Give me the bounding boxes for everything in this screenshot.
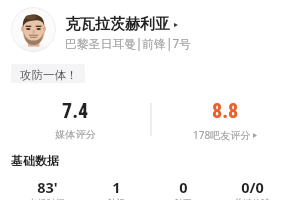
- button[interactable]: 0: [146, 177, 220, 200]
- button[interactable]: 8.8: [150, 99, 300, 142]
- button[interactable]: 7.4: [0, 99, 150, 141]
- button[interactable]: 攻防一体！: [11, 64, 85, 83]
- staticText: 0/0: [241, 177, 264, 197]
- button[interactable]: Player photo: [11, 7, 56, 52]
- button[interactable]: 1: [79, 177, 153, 200]
- staticText: 0: [179, 177, 188, 197]
- staticText: 克瓦拉茨赫利亚: [65, 15, 170, 34]
- staticText: 射正: [174, 197, 192, 200]
- staticText: 巴黎圣日耳曼|前锋|7号: [65, 35, 191, 51]
- staticText: 7.4: [62, 99, 89, 122]
- staticText: 关键传球: [234, 197, 270, 200]
- staticText: 178吧友评分: [193, 128, 251, 142]
- staticText: 83': [37, 177, 58, 197]
- staticText: 1: [112, 177, 121, 197]
- button[interactable]: 克瓦拉茨赫利亚: [65, 15, 178, 34]
- staticText: 媒体评分: [55, 128, 96, 141]
- staticText: 攻防一体！: [20, 68, 78, 82]
- staticText: 出场时间: [29, 197, 65, 200]
- staticText: 8.8: [212, 99, 239, 122]
- button[interactable]: 83': [10, 177, 84, 200]
- staticText: 射门: [107, 197, 125, 200]
- button[interactable]: 0/0: [215, 177, 289, 200]
- staticText: 基础数据: [11, 153, 59, 168]
